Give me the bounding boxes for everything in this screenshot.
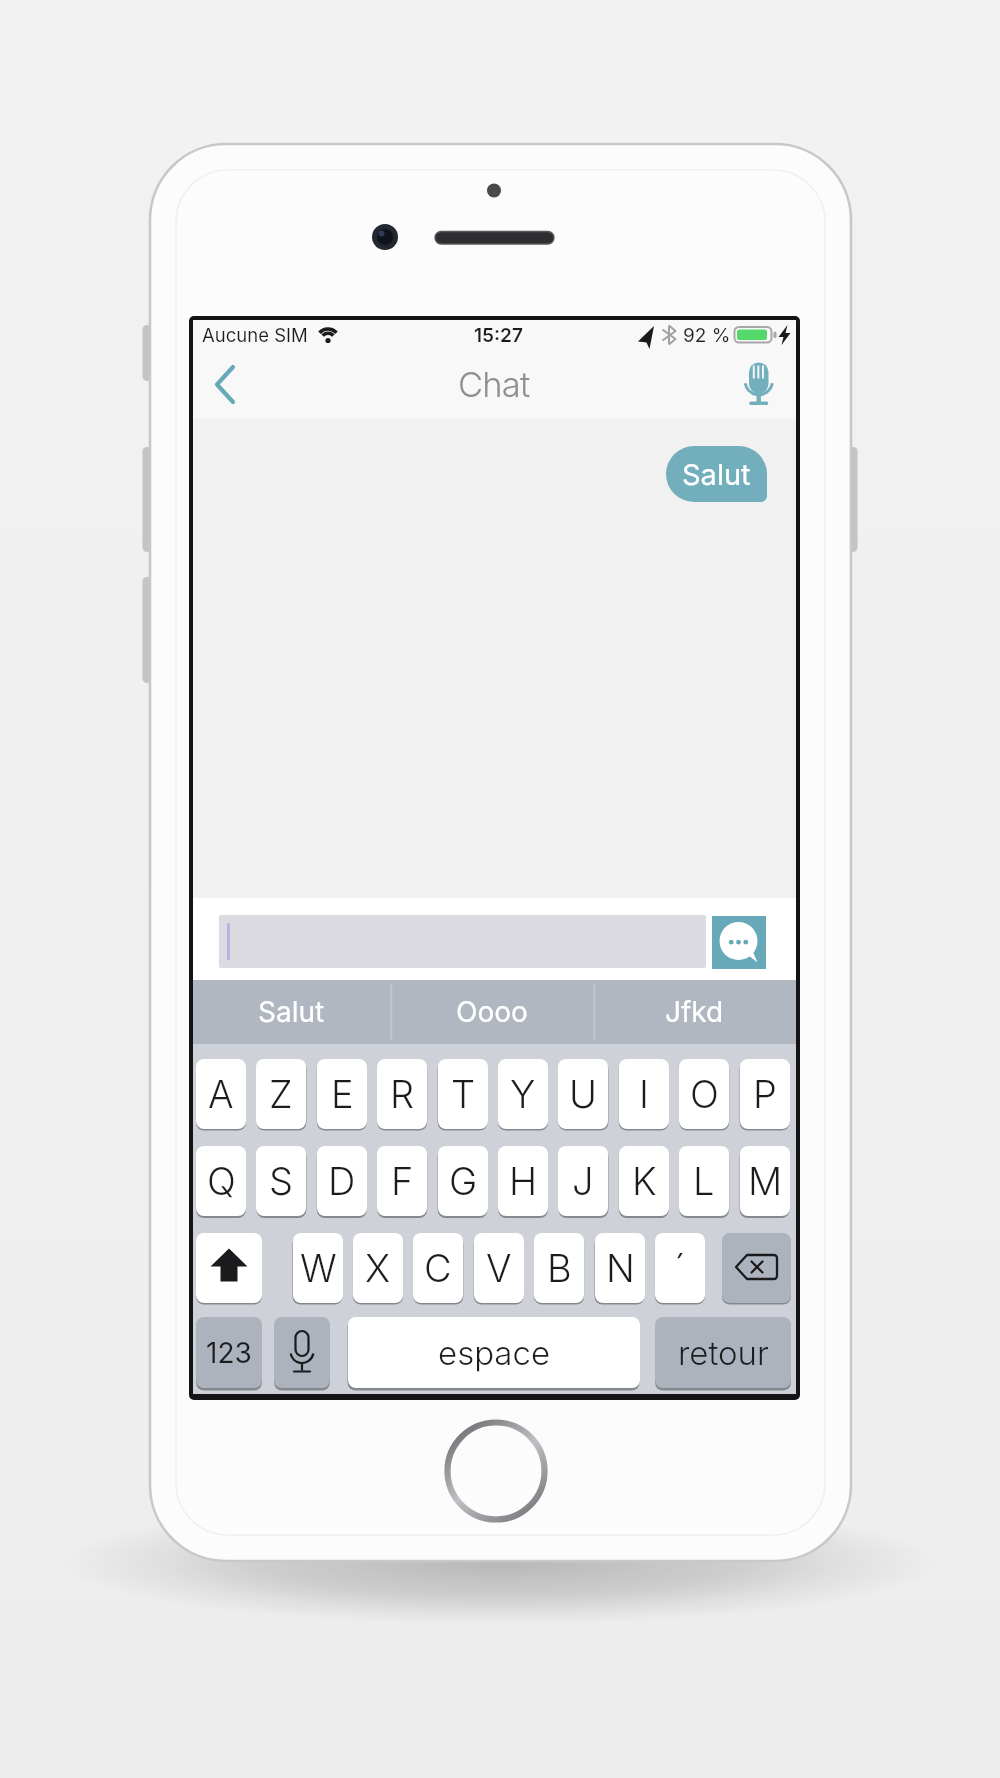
staticText: K bbox=[632, 1158, 657, 1204]
button[interactable]: H bbox=[498, 1146, 548, 1216]
button[interactable] bbox=[730, 354, 786, 414]
staticText: espace bbox=[438, 1333, 551, 1373]
button[interactable]: espace bbox=[348, 1317, 640, 1388]
staticText: ´ bbox=[674, 1245, 686, 1291]
button[interactable]: ´ bbox=[655, 1233, 705, 1303]
button[interactable]: X bbox=[353, 1233, 403, 1303]
staticText: T bbox=[451, 1071, 476, 1117]
button[interactable]: U bbox=[558, 1059, 608, 1129]
staticText: retour bbox=[678, 1333, 769, 1373]
button[interactable]: Q bbox=[196, 1146, 246, 1216]
staticText: W bbox=[300, 1245, 337, 1291]
button[interactable]: I bbox=[619, 1059, 669, 1129]
button[interactable]: W bbox=[293, 1233, 343, 1303]
button[interactable]: V bbox=[474, 1233, 524, 1303]
button[interactable]: D bbox=[317, 1146, 367, 1216]
button[interactable]: Z bbox=[256, 1059, 306, 1129]
staticText: F bbox=[391, 1158, 414, 1204]
button[interactable]: C bbox=[413, 1233, 463, 1303]
staticText: H bbox=[509, 1158, 538, 1204]
staticText: V bbox=[486, 1245, 512, 1291]
button[interactable]: Salut bbox=[666, 446, 767, 502]
staticText: P bbox=[753, 1071, 777, 1117]
staticText: Salut bbox=[682, 457, 751, 492]
staticText: Oooo bbox=[456, 995, 528, 1029]
button[interactable]: O bbox=[679, 1059, 729, 1129]
staticText: G bbox=[449, 1158, 478, 1204]
staticText: 123 bbox=[206, 1336, 252, 1370]
button[interactable]: F bbox=[377, 1146, 427, 1216]
staticText: Chat bbox=[458, 364, 530, 406]
button[interactable] bbox=[196, 1233, 262, 1303]
button[interactable] bbox=[712, 916, 766, 969]
staticText: Q bbox=[207, 1158, 236, 1204]
button[interactable]: Y bbox=[498, 1059, 548, 1129]
staticText: J bbox=[572, 1158, 594, 1204]
staticText: O bbox=[690, 1071, 719, 1117]
staticText: C bbox=[424, 1245, 452, 1291]
button[interactable]: T bbox=[438, 1059, 488, 1129]
staticText: L bbox=[693, 1158, 715, 1204]
button[interactable]: retour bbox=[655, 1317, 791, 1388]
staticText: 15:27 bbox=[474, 324, 523, 345]
button[interactable]: P bbox=[740, 1059, 790, 1129]
staticText: N bbox=[606, 1245, 635, 1291]
button[interactable]: E bbox=[317, 1059, 367, 1129]
button[interactable]: N bbox=[595, 1233, 645, 1303]
button[interactable] bbox=[722, 1233, 791, 1303]
staticText: D bbox=[328, 1158, 356, 1204]
button[interactable]: A bbox=[196, 1059, 246, 1129]
button[interactable] bbox=[274, 1317, 330, 1388]
button[interactable]: R bbox=[377, 1059, 427, 1129]
staticText: Y bbox=[510, 1071, 536, 1117]
button[interactable]: M bbox=[740, 1146, 790, 1216]
button[interactable]: J bbox=[558, 1146, 608, 1216]
staticText: X bbox=[365, 1245, 391, 1291]
staticText: R bbox=[390, 1071, 415, 1117]
button[interactable]: K bbox=[619, 1146, 669, 1216]
staticText: E bbox=[331, 1071, 354, 1117]
button[interactable] bbox=[198, 352, 254, 416]
button[interactable]: G bbox=[438, 1146, 488, 1216]
button[interactable]: B bbox=[534, 1233, 584, 1303]
button[interactable]: L bbox=[679, 1146, 729, 1216]
staticText: A bbox=[208, 1071, 234, 1117]
staticText: M bbox=[748, 1158, 783, 1204]
button[interactable] bbox=[193, 980, 390, 1044]
staticText: Jfkd bbox=[665, 995, 724, 1029]
button[interactable]: S bbox=[256, 1146, 306, 1216]
staticText: Z bbox=[269, 1071, 293, 1117]
button[interactable] bbox=[390, 980, 593, 1044]
button[interactable]: 123 bbox=[196, 1317, 262, 1388]
staticText: Aucune SIM bbox=[202, 324, 308, 345]
staticText: 92 % bbox=[683, 324, 731, 345]
staticText: U bbox=[569, 1071, 597, 1117]
staticText: B bbox=[547, 1245, 572, 1291]
staticText: S bbox=[269, 1158, 294, 1204]
staticText: Salut bbox=[258, 995, 325, 1029]
staticText: I bbox=[639, 1071, 649, 1117]
button[interactable] bbox=[593, 980, 796, 1044]
